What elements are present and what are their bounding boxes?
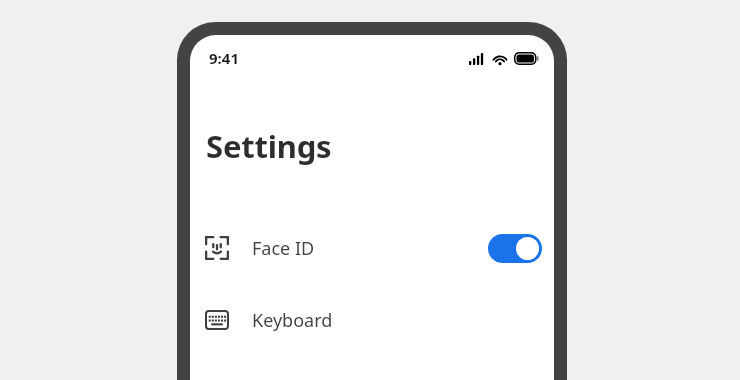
other: Face ID <box>205 236 229 260</box>
button[interactable]: Face ID toggle, on <box>488 234 542 263</box>
staticText: Face ID <box>252 236 315 261</box>
button[interactable]: Face ID <box>190 212 554 284</box>
button[interactable]: Keyboard <box>190 284 554 356</box>
staticText: Keyboard <box>252 308 333 333</box>
staticText: 9:41 <box>209 48 239 68</box>
staticText: Settings <box>206 125 332 167</box>
other: Keyboard <box>205 310 229 330</box>
